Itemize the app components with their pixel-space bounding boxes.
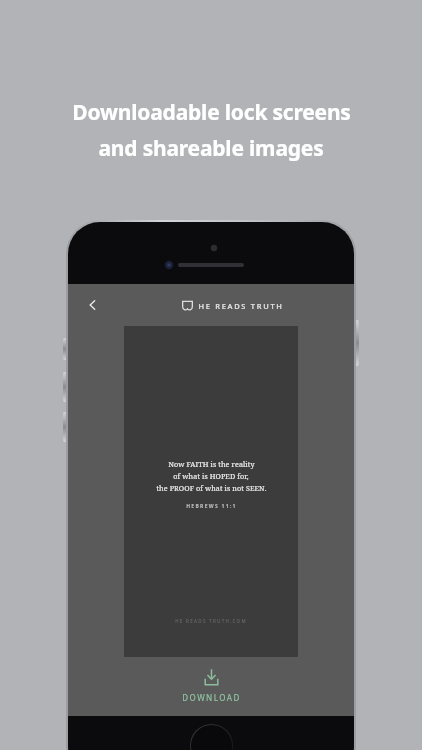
staticText: HE READS TRUTH [198,301,284,311]
button[interactable]: HE READS TRUTH [182,300,284,311]
button[interactable]: Home [190,724,233,750]
staticText: HE READS TRUTH.COM [175,618,247,624]
button[interactable]: Back [76,288,110,322]
staticText: Downloadable lock screens [72,98,351,127]
staticText: the PROOF of what is not SEEN. [156,483,267,493]
staticText: HEBREWS 11:1 [186,503,237,510]
staticText: and shareable images [98,134,324,163]
button[interactable]: Now FAITH is the reality [124,326,298,657]
staticText: of what is HOPED for, [173,471,249,481]
button[interactable]: DOWNLOAD [68,660,354,716]
staticText: DOWNLOAD [182,692,241,703]
staticText: Now FAITH is the reality [168,459,255,469]
